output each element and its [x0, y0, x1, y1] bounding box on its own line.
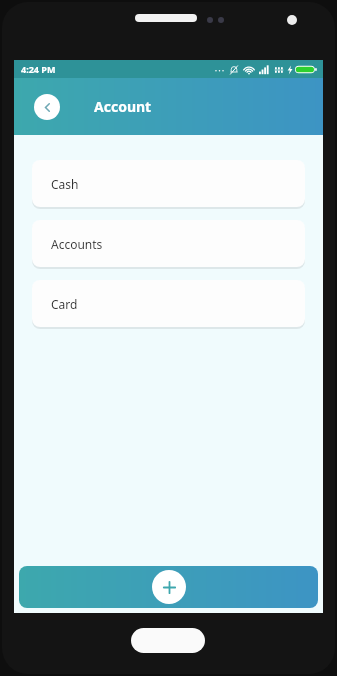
staticText: Cash	[51, 176, 79, 192]
staticText: Accounts	[51, 236, 103, 252]
staticText: 4:24 PM	[21, 63, 56, 75]
button[interactable]: Card	[32, 280, 305, 327]
button[interactable]	[19, 566, 318, 608]
button[interactable]: Cash	[32, 160, 305, 207]
staticText: Account	[94, 97, 152, 116]
staticText: Card	[51, 296, 78, 312]
button[interactable]: Back	[34, 94, 60, 120]
button[interactable]: Accounts	[32, 220, 305, 267]
button[interactable]: Add	[152, 570, 186, 604]
